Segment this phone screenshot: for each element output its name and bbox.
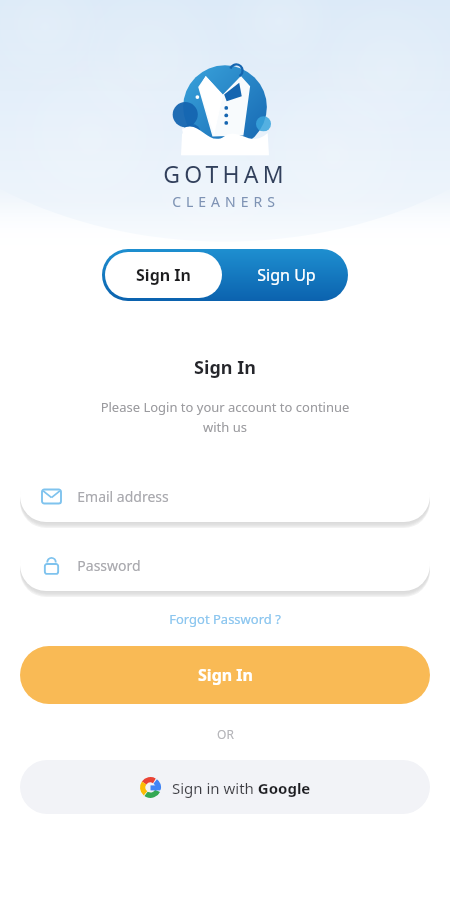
staticText: CLEANERS xyxy=(172,192,280,211)
button[interactable]: Sign In xyxy=(105,252,222,298)
staticText: Sign Up xyxy=(257,264,316,286)
button[interactable]: Forgot Password ? xyxy=(161,606,289,632)
staticText: Password xyxy=(77,556,141,575)
button[interactable]: Password xyxy=(20,539,430,591)
staticText: Email address xyxy=(77,487,169,506)
staticText: Sign In xyxy=(194,355,256,380)
staticText: Please Login to your account to continue… xyxy=(60,398,390,436)
staticText: Sign in with Google xyxy=(172,778,311,798)
button[interactable]: Sign Up xyxy=(225,249,348,301)
staticText: Forgot Password ? xyxy=(169,610,281,628)
button[interactable]: Sign In xyxy=(20,646,430,704)
staticText: GOTHAM xyxy=(163,158,288,189)
button[interactable]: Sign in with Google xyxy=(20,760,430,814)
staticText: OR xyxy=(217,726,234,742)
staticText: Sign In xyxy=(136,264,191,286)
button[interactable]: Email address xyxy=(20,470,430,522)
staticText: Sign In xyxy=(198,664,253,686)
